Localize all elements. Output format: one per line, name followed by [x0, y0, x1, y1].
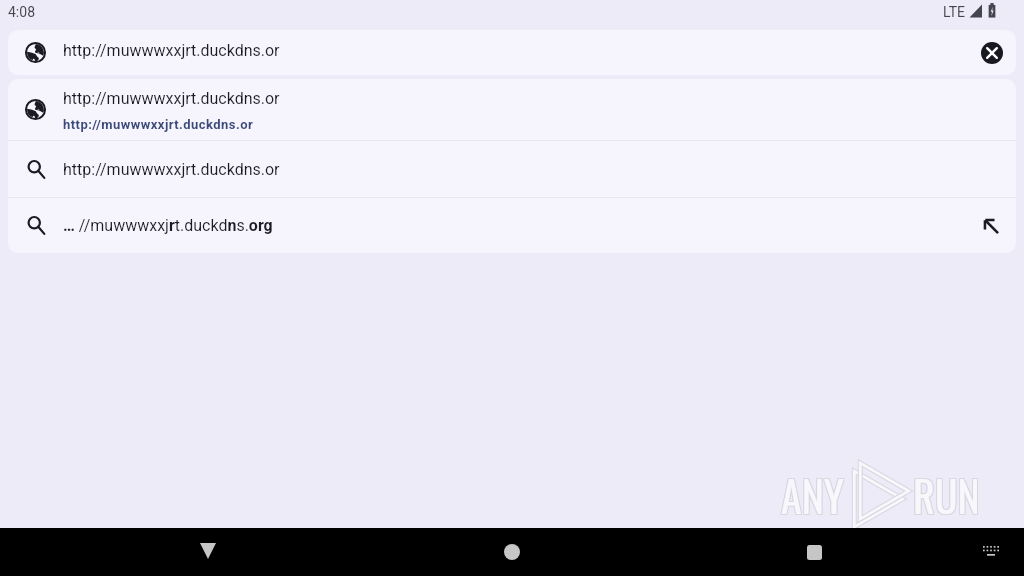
staticText: http://muwwwxxjrt.duckdns.or	[63, 160, 280, 179]
staticText: RUN	[914, 465, 981, 527]
staticText: RUN	[912, 463, 979, 525]
staticText: … //muwwwxxjrt.duckdns.org	[63, 216, 273, 235]
button[interactable]: Clear	[981, 42, 1003, 64]
button[interactable]: Back	[190, 534, 226, 570]
staticText: RUN	[912, 464, 979, 526]
button[interactable]: http://muwwwxxjrt.duckdns.or	[8, 79, 1016, 140]
button[interactable]: … //muwwwxxjrt.duckdns.org	[8, 198, 1016, 253]
staticText: ANY	[781, 465, 845, 527]
staticText: RUN	[913, 465, 980, 527]
staticText: http://muwwwxxjrt.duckdns.or	[63, 117, 254, 132]
staticText: ANY	[782, 464, 846, 526]
staticText: LTE	[943, 4, 965, 20]
button[interactable]: Home	[494, 534, 530, 570]
staticText: ANY	[782, 463, 846, 525]
staticText: RUN	[912, 465, 979, 527]
staticText: RUN	[914, 464, 981, 526]
staticText: ANY	[780, 463, 844, 525]
button[interactable]: Fill in suggestion	[980, 215, 1002, 237]
button[interactable]: http://muwwwxxjrt.duckdns.or	[8, 141, 1016, 197]
staticText: http://muwwwxxjrt.duckdns.or	[63, 89, 280, 108]
staticText: http://muwwwxxjrt.duckdns.or	[63, 41, 280, 60]
staticText: RUN	[913, 463, 980, 525]
staticText: ANY	[780, 464, 844, 526]
button[interactable]: Switch keyboard	[975, 534, 1007, 566]
staticText: ANY	[780, 465, 844, 527]
staticText: 4:08	[8, 4, 35, 20]
staticText: RUN	[914, 463, 981, 525]
button[interactable]: Recents	[796, 534, 832, 570]
staticText: ANY	[781, 464, 845, 526]
staticText: ANY	[781, 463, 845, 525]
button[interactable]: http://muwwwxxjrt.duckdns.or	[8, 30, 1016, 75]
staticText: RUN	[913, 464, 980, 526]
staticText: ANY	[782, 465, 846, 527]
